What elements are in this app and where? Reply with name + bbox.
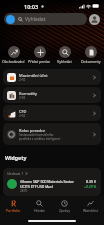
staticText: UCITS ETF USD (Acc): [20, 184, 53, 189]
staticText: Vyhledat: [25, 16, 46, 23]
button[interactable]: Sledovat 1: [3, 168, 101, 196]
staticText: Zprávy: [59, 208, 71, 213]
staticText: 2•92: [19, 78, 26, 82]
button[interactable]: Vyhledat: [52, 46, 77, 64]
staticText: 8.35 €: [86, 179, 97, 184]
staticText: Hledat: [34, 208, 45, 213]
staticText: Robo poradce: [19, 128, 46, 133]
staticText: CFD: [19, 109, 27, 114]
button[interactable]: Obchodování: [1, 46, 26, 64]
button[interactable]: Portfolio: [1, 200, 26, 213]
button[interactable]: Přidat peníze: [27, 46, 52, 64]
button[interactable]: Maximální účet: [3, 69, 101, 85]
button[interactable]: Robo poradce: [3, 123, 101, 145]
staticText: 2•92: [19, 96, 26, 100]
button[interactable]: Komodity: [3, 87, 101, 103]
staticText: Sestavování investičního portfolia s umě…: [19, 133, 61, 141]
button[interactable]: Dokumenty: [78, 46, 103, 64]
button[interactable]: Watchlist: [78, 200, 103, 213]
staticText: 2•92: [19, 114, 26, 118]
staticText: Vyhledat: [57, 59, 72, 64]
staticText: Watchlist: [83, 208, 99, 213]
staticText: iShares S&P 500 Materials Sector: [20, 179, 74, 184]
staticText: Přidat peníze: [28, 59, 51, 64]
staticText: Komodity: [19, 91, 38, 96]
button[interactable]: Vyhledat: [4, 13, 87, 25]
staticText: Obchodování: [2, 59, 25, 64]
button[interactable]: Profil: [89, 14, 100, 25]
staticText: 2870: [20, 189, 28, 193]
button[interactable]: CFD: [3, 105, 101, 121]
staticText: Portfolio: [6, 208, 21, 213]
button[interactable]: Zprávy: [52, 200, 77, 213]
button[interactable]: Hledat: [27, 200, 52, 213]
staticText: +0.29 %: [84, 184, 97, 189]
staticText: Widgety: [5, 154, 27, 161]
staticText: 10:03: [24, 3, 39, 10]
staticText: Maximální účet: [19, 73, 48, 78]
staticText: Sledovat 1: [7, 171, 24, 176]
staticText: Dokumenty: [81, 59, 101, 64]
